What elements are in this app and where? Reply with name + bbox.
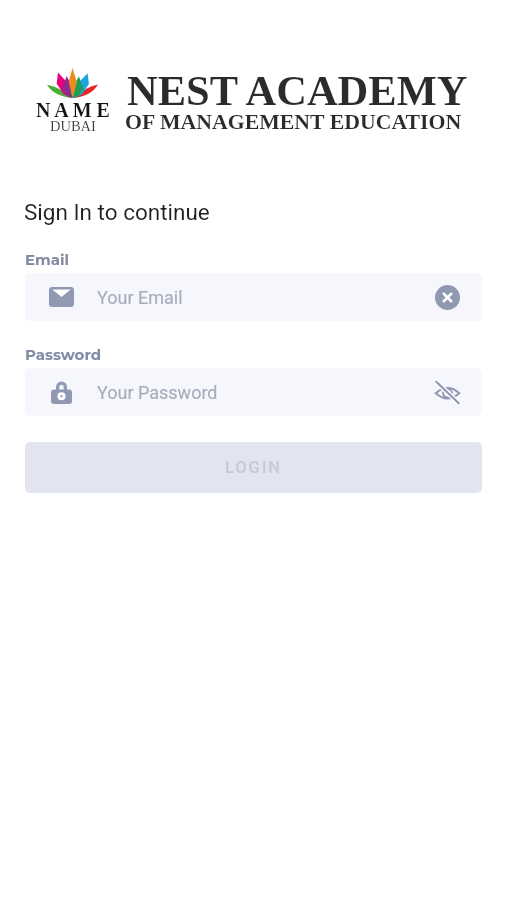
staticText: Your Password [97,382,218,403]
staticText: Password [25,345,102,363]
staticText: N A M E [36,99,110,121]
staticText: NEST ACADEMY [127,67,468,114]
staticText: OF MANAGEMENT EDUCATION [125,110,462,134]
button[interactable]: Your Password [25,368,482,416]
button[interactable]: Show password [430,375,464,409]
staticText: DUBAI [50,118,96,134]
staticText: LOGIN [225,458,282,477]
button[interactable]: Your Email [25,273,482,321]
staticText: Your Email [97,287,183,308]
staticText: Email [25,250,70,268]
staticText: Sign In to continue [24,199,210,225]
button[interactable]: Clear email [430,280,464,314]
